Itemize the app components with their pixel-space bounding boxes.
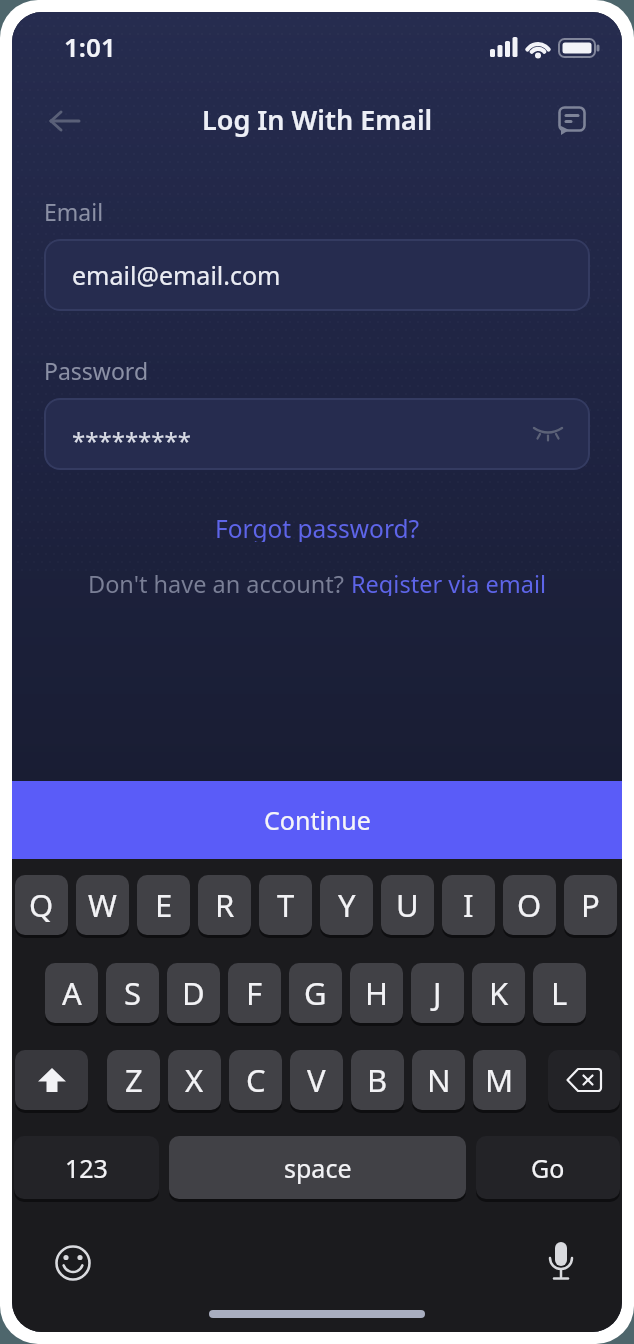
button[interactable]: email@email.com — [44, 239, 590, 311]
staticText: Continue — [264, 803, 371, 837]
staticText: Register via email — [351, 568, 547, 596]
staticText: Go — [531, 1151, 565, 1185]
staticText: L — [551, 972, 568, 1014]
staticText: F — [246, 972, 263, 1014]
button[interactable]: C — [229, 1050, 282, 1113]
button[interactable]: W — [76, 875, 129, 938]
staticText: U — [396, 884, 419, 926]
button[interactable]: Continue — [12, 781, 622, 859]
button[interactable]: T — [259, 875, 312, 938]
staticText: Log In With Email — [202, 101, 433, 138]
button[interactable]: A — [45, 963, 98, 1026]
staticText: I — [463, 884, 474, 926]
staticText: M — [485, 1059, 514, 1101]
button[interactable]: N — [412, 1050, 465, 1113]
staticText: 123 — [65, 1151, 108, 1185]
staticText: W — [88, 884, 117, 926]
staticText: P — [581, 884, 600, 926]
button[interactable]: F — [228, 963, 281, 1026]
staticText: Password — [44, 355, 149, 386]
button[interactable]: U — [381, 875, 434, 938]
button[interactable]: B — [351, 1050, 404, 1113]
button[interactable]: Z — [107, 1050, 160, 1113]
button[interactable]: J — [411, 963, 464, 1026]
staticText: space — [284, 1151, 352, 1185]
button[interactable]: K — [472, 963, 525, 1026]
staticText: Y — [338, 884, 356, 926]
staticText: G — [304, 972, 327, 1014]
staticText: K — [489, 972, 509, 1014]
staticText: Z — [125, 1059, 143, 1101]
button[interactable]: E — [137, 875, 190, 938]
staticText: V — [307, 1059, 326, 1101]
button[interactable]: space — [169, 1136, 466, 1202]
staticText: Q — [29, 884, 54, 926]
button[interactable]: Y — [320, 875, 373, 938]
staticText: O — [517, 884, 542, 926]
button[interactable]: O — [503, 875, 556, 938]
button[interactable]: D — [167, 963, 220, 1026]
staticText: C — [246, 1059, 266, 1101]
staticText: Email — [44, 196, 104, 227]
button[interactable]: P — [564, 875, 617, 938]
staticText: J — [433, 972, 442, 1014]
button[interactable]: I — [442, 875, 495, 938]
staticText: 1:01 — [64, 29, 116, 64]
button[interactable]: Go — [476, 1136, 620, 1202]
button[interactable]: H — [350, 963, 403, 1026]
button[interactable]: Forgot password? — [215, 512, 420, 542]
staticText: ********* — [72, 424, 192, 457]
button[interactable] — [38, 100, 90, 142]
button[interactable] — [15, 1050, 88, 1113]
button[interactable]: L — [533, 963, 586, 1026]
button[interactable]: V — [290, 1050, 343, 1113]
staticText: X — [185, 1059, 204, 1101]
staticText: B — [367, 1059, 388, 1101]
button[interactable] — [526, 414, 570, 454]
button[interactable] — [548, 1050, 620, 1113]
button[interactable]: M — [473, 1050, 526, 1113]
button[interactable]: Register via email — [351, 568, 547, 596]
button[interactable] — [544, 1241, 578, 1283]
staticText: A — [62, 972, 82, 1014]
button[interactable]: ********* — [44, 398, 590, 470]
button[interactable]: 123 — [14, 1136, 159, 1202]
staticText: Forgot password? — [215, 512, 420, 542]
button[interactable] — [53, 1243, 93, 1283]
button[interactable]: S — [106, 963, 159, 1026]
staticText: E — [155, 884, 173, 926]
staticText: D — [182, 972, 205, 1014]
staticText: N — [427, 1059, 451, 1101]
staticText: S — [124, 972, 142, 1014]
staticText: R — [215, 884, 235, 926]
button[interactable]: G — [289, 963, 342, 1026]
staticText: T — [277, 884, 295, 926]
staticText: Don't have an account? — [88, 568, 351, 596]
button[interactable] — [548, 97, 596, 145]
button[interactable]: X — [168, 1050, 221, 1113]
button[interactable]: Q — [15, 875, 68, 938]
button[interactable]: R — [198, 875, 251, 938]
staticText: email@email.com — [72, 258, 281, 292]
staticText: H — [365, 972, 388, 1014]
